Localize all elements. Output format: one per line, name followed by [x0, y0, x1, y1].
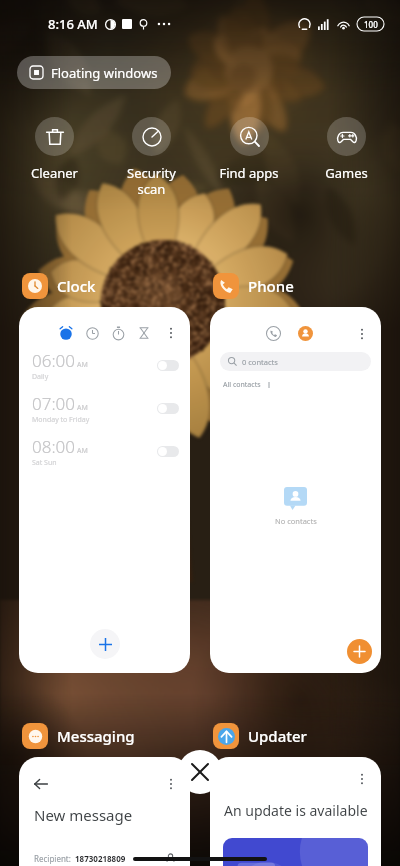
button[interactable]: Close all [178, 750, 222, 794]
staticText: 0 contacts [242, 357, 278, 367]
staticText: Daily [32, 372, 49, 382]
button[interactable]: Add contact [347, 639, 372, 664]
button[interactable]: Floating windows [17, 56, 171, 89]
staticText: AM [77, 446, 88, 456]
staticText: Games [325, 164, 368, 182]
staticText: AM [77, 403, 88, 413]
staticText: 100 [364, 19, 378, 30]
button[interactable]: Security scan [107, 117, 195, 197]
staticText: Find apps [219, 164, 279, 182]
button[interactable]: 0 contacts [220, 352, 371, 371]
button[interactable]: An update is available [210, 757, 381, 866]
staticText: Updater [248, 726, 307, 746]
staticText: 06:00 [32, 349, 75, 372]
staticText: Security scan [127, 164, 176, 197]
staticText: 08:00 [32, 435, 75, 458]
button[interactable]: Toggle alarm [157, 446, 179, 457]
button[interactable]: Toggle alarm [157, 360, 179, 371]
staticText: 18730218809 [75, 853, 126, 864]
staticText: Phone [248, 276, 294, 296]
staticText: An update is available [224, 801, 368, 820]
staticText: Clock [57, 276, 96, 296]
button[interactable]: Updater [213, 723, 307, 749]
staticText: Monday to Friday [32, 415, 90, 425]
staticText: Recipient: [34, 853, 71, 864]
staticText: AM [77, 360, 88, 370]
staticText: New message [34, 805, 133, 825]
button[interactable]: Add alarm [90, 629, 120, 659]
button[interactable]: Messaging [22, 723, 135, 749]
staticText: All contacts [223, 380, 261, 390]
button[interactable]: New message [19, 757, 190, 866]
button[interactable]: Clock [22, 273, 96, 299]
staticText: Messaging [57, 726, 135, 746]
button[interactable]: Toggle alarm [157, 403, 179, 414]
staticText: Floating windows [51, 64, 158, 82]
staticText: Cleaner [31, 164, 78, 182]
button[interactable]: Find apps [205, 117, 293, 182]
button[interactable]: 0 contacts [210, 307, 381, 673]
button[interactable]: Phone [213, 273, 294, 299]
staticText: 8:16 AM [48, 15, 98, 33]
button[interactable]: Cleaner [10, 117, 98, 182]
button[interactable]: Games [302, 117, 390, 182]
staticText: Sat Sun [32, 458, 57, 468]
staticText: 07:00 [32, 392, 75, 415]
staticText: No contacts [275, 516, 317, 526]
button[interactable]: 06:00 [19, 307, 190, 673]
